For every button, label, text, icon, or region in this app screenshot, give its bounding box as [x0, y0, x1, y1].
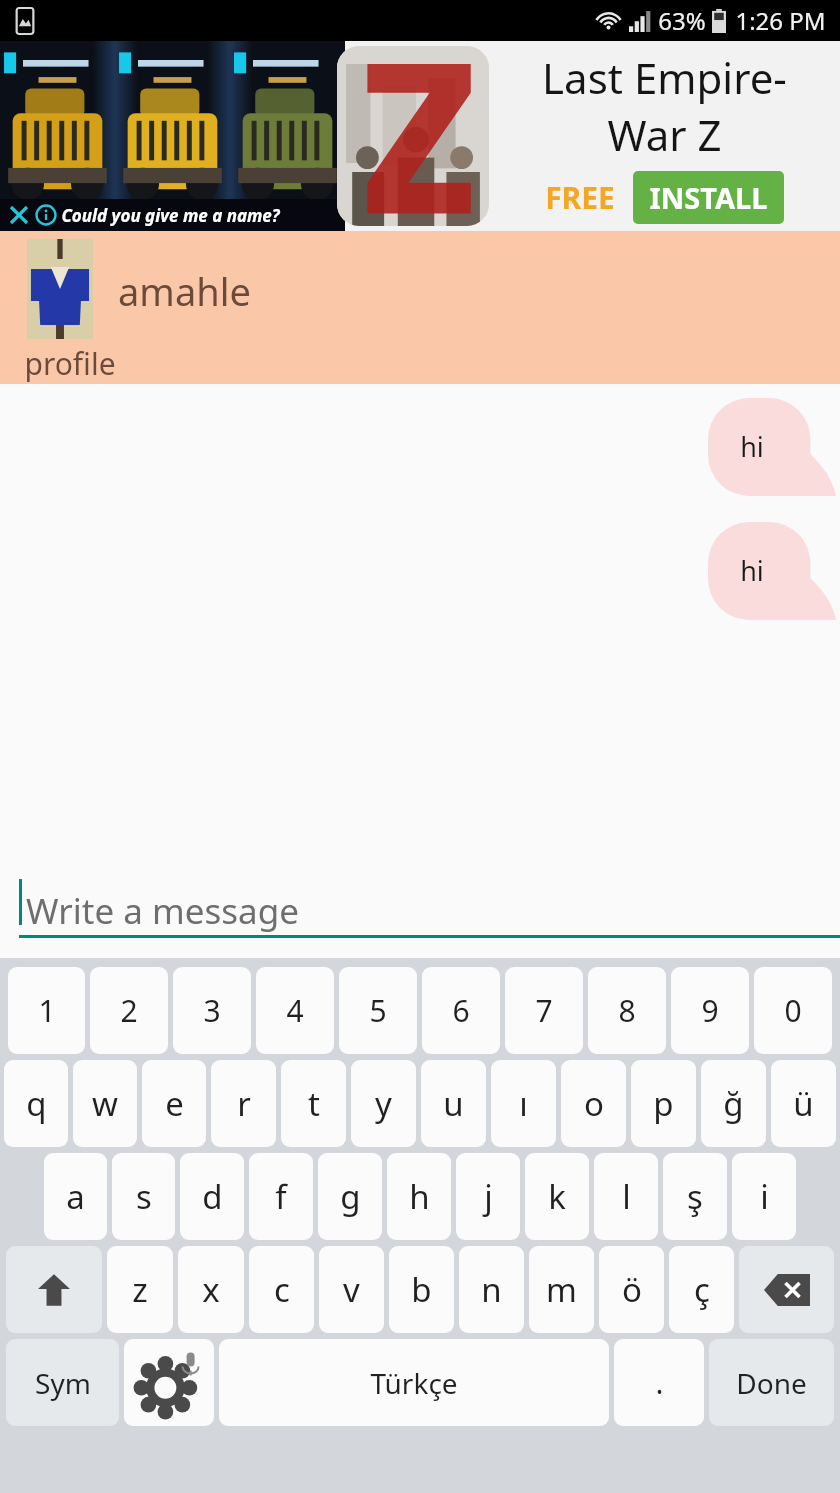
button[interactable]: ş	[663, 1153, 727, 1240]
button[interactable]: .	[614, 1339, 704, 1426]
staticText: d	[202, 1174, 223, 1219]
button[interactable]: m	[529, 1246, 594, 1333]
staticText: h	[409, 1174, 430, 1219]
button[interactable]: amahle	[0, 231, 840, 384]
button[interactable]: Done	[709, 1339, 834, 1426]
staticText: 7	[535, 990, 553, 1031]
button[interactable]: Shift	[6, 1246, 102, 1333]
button[interactable]: p	[631, 1060, 696, 1147]
staticText: ö	[622, 1267, 642, 1312]
button[interactable]: q	[4, 1060, 68, 1147]
button[interactable]: Settings	[124, 1339, 214, 1426]
button[interactable]: Write a message	[0, 865, 840, 958]
button[interactable]: 6	[422, 967, 500, 1054]
staticText: ç	[694, 1267, 710, 1312]
staticText: u	[443, 1081, 464, 1126]
button[interactable]: Sym	[6, 1339, 119, 1426]
staticText: n	[481, 1267, 502, 1312]
staticText: amahle	[118, 265, 251, 317]
staticText: p	[653, 1081, 674, 1126]
button[interactable]: ü	[771, 1060, 836, 1147]
staticText: s	[136, 1174, 152, 1219]
button[interactable]: o	[561, 1060, 626, 1147]
staticText: e	[165, 1081, 184, 1126]
staticText: 6	[452, 990, 470, 1031]
button[interactable]: a	[44, 1153, 107, 1240]
button[interactable]: 1	[8, 967, 85, 1054]
button[interactable]: i	[732, 1153, 796, 1240]
staticText: k	[548, 1174, 566, 1219]
button[interactable]: x	[178, 1246, 244, 1333]
button[interactable]: Backspace	[739, 1246, 834, 1333]
button[interactable]: 0	[754, 967, 832, 1054]
button[interactable]: 8	[588, 967, 666, 1054]
button[interactable]: profile	[24, 343, 116, 384]
staticText: l	[622, 1174, 631, 1219]
button[interactable]: k	[525, 1153, 589, 1240]
button[interactable]: v	[319, 1246, 384, 1333]
staticText: f	[275, 1174, 287, 1219]
staticText: j	[484, 1174, 493, 1219]
staticText: o	[584, 1081, 604, 1126]
staticText: Sym	[35, 1364, 91, 1402]
staticText: 1	[38, 990, 56, 1031]
button[interactable]: h	[387, 1153, 451, 1240]
staticText: Could you give me a name?	[61, 204, 280, 227]
button[interactable]: hi	[708, 398, 836, 496]
button[interactable]: n	[459, 1246, 524, 1333]
staticText: FREE	[545, 177, 615, 218]
button[interactable]: u	[421, 1060, 486, 1147]
button[interactable]: j	[456, 1153, 520, 1240]
button[interactable]: b	[389, 1246, 454, 1333]
staticText: 0	[784, 990, 802, 1031]
button[interactable]: y	[351, 1060, 416, 1147]
button[interactable]: ö	[599, 1246, 664, 1333]
button[interactable]: ı	[491, 1060, 556, 1147]
button[interactable]: 9	[671, 967, 749, 1054]
staticText: y	[375, 1081, 392, 1126]
button[interactable]: r	[211, 1060, 276, 1147]
staticText: 9	[701, 990, 719, 1031]
staticText: x	[202, 1267, 220, 1312]
button[interactable]: t	[281, 1060, 346, 1147]
button[interactable]: g	[318, 1153, 382, 1240]
button[interactable]: w	[73, 1060, 137, 1147]
staticText: b	[411, 1267, 432, 1312]
button[interactable]: hi	[708, 522, 836, 620]
staticText: War Z	[607, 106, 722, 163]
button[interactable]: c	[249, 1246, 314, 1333]
staticText: 1:26 PM	[735, 4, 826, 37]
button[interactable]: 5	[339, 967, 417, 1054]
button[interactable]: ç	[669, 1246, 734, 1333]
button[interactable]: Türkçe	[219, 1339, 609, 1426]
staticText: .	[655, 1362, 664, 1403]
button[interactable]: e	[142, 1060, 206, 1147]
staticText: 63%	[658, 4, 706, 37]
button[interactable]: 3	[173, 967, 251, 1054]
staticText: ı	[519, 1081, 528, 1126]
staticText: INSTALL	[649, 178, 768, 217]
staticText: 8	[618, 990, 636, 1031]
button[interactable]: l	[594, 1153, 658, 1240]
staticText: v	[343, 1267, 360, 1312]
button[interactable]: 7	[505, 967, 583, 1054]
staticText: w	[92, 1081, 118, 1126]
staticText: a	[66, 1174, 85, 1219]
staticText: 4	[286, 990, 304, 1031]
staticText: r	[237, 1081, 251, 1126]
button[interactable]: Advertisement: Last Empire War Z	[0, 41, 840, 231]
staticText: hi	[740, 428, 764, 465]
button[interactable]: 4	[256, 967, 334, 1054]
staticText: 3	[203, 990, 221, 1031]
button[interactable]: z	[107, 1246, 173, 1333]
staticText: 2	[120, 990, 138, 1031]
button[interactable]: ğ	[701, 1060, 766, 1147]
staticText: c	[274, 1267, 290, 1312]
button[interactable]: 2	[90, 967, 168, 1054]
button[interactable]: d	[180, 1153, 244, 1240]
staticText: ğ	[723, 1081, 744, 1126]
button[interactable]: INSTALL	[649, 178, 768, 217]
staticText: 5	[369, 990, 387, 1031]
button[interactable]: s	[112, 1153, 175, 1240]
button[interactable]: f	[249, 1153, 313, 1240]
